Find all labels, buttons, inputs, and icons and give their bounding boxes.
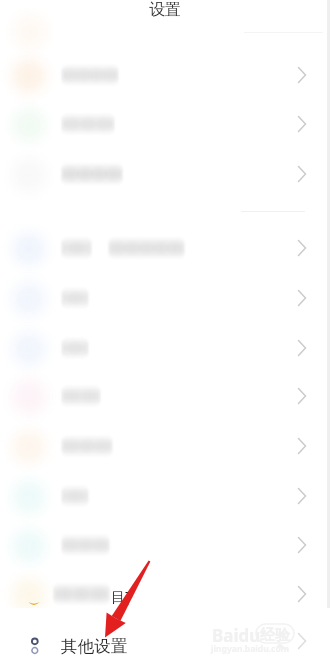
staticText: Baidu: [212, 624, 261, 647]
button[interactable]: Settings item: [0, 324, 330, 372]
button[interactable]: Settings item: [0, 224, 330, 272]
button[interactable]: Settings item: [0, 100, 330, 148]
button[interactable]: Settings item: [0, 372, 330, 420]
staticText: 目]: [111, 587, 130, 606]
button[interactable]: Settings item: [0, 274, 330, 322]
button[interactable]: Settings item: [0, 472, 330, 520]
button[interactable]: Settings item: [290, 630, 312, 652]
button[interactable]: Settings item: [0, 570, 330, 618]
button[interactable]: Settings item: [0, 521, 330, 569]
button[interactable]: Settings item: [0, 150, 330, 198]
button[interactable]: Settings item: [0, 422, 330, 470]
staticText: 设置: [149, 0, 181, 19]
staticText: 其他设置: [61, 636, 127, 657]
staticText: jingyan.baidu.com: [211, 643, 290, 655]
button[interactable]: 其他设置: [21, 631, 137, 661]
staticText: 经验: [260, 626, 290, 645]
button[interactable]: Settings item: [0, 51, 330, 99]
